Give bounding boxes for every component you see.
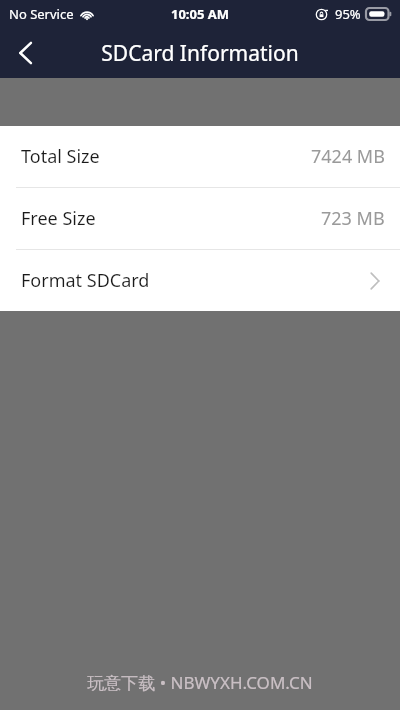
staticText: SDCard Information [101,39,299,68]
staticText: No Service [9,5,74,23]
staticText: Format SDCard [21,268,150,293]
staticText: 玩意下载 • NBWYXH.COM.CN [87,671,313,694]
button[interactable]: Format SDCard [0,250,400,311]
staticText: 10:05 AM [171,5,230,23]
staticText: Total Size [21,144,100,169]
staticText: 7424 MB [311,144,385,169]
button[interactable]: Back [0,28,50,78]
staticText: 95% [335,5,361,23]
button[interactable]: Free Size [0,188,400,249]
staticText: Free Size [21,206,96,231]
button[interactable]: Total Size [0,126,400,187]
staticText: 723 MB [321,206,385,231]
